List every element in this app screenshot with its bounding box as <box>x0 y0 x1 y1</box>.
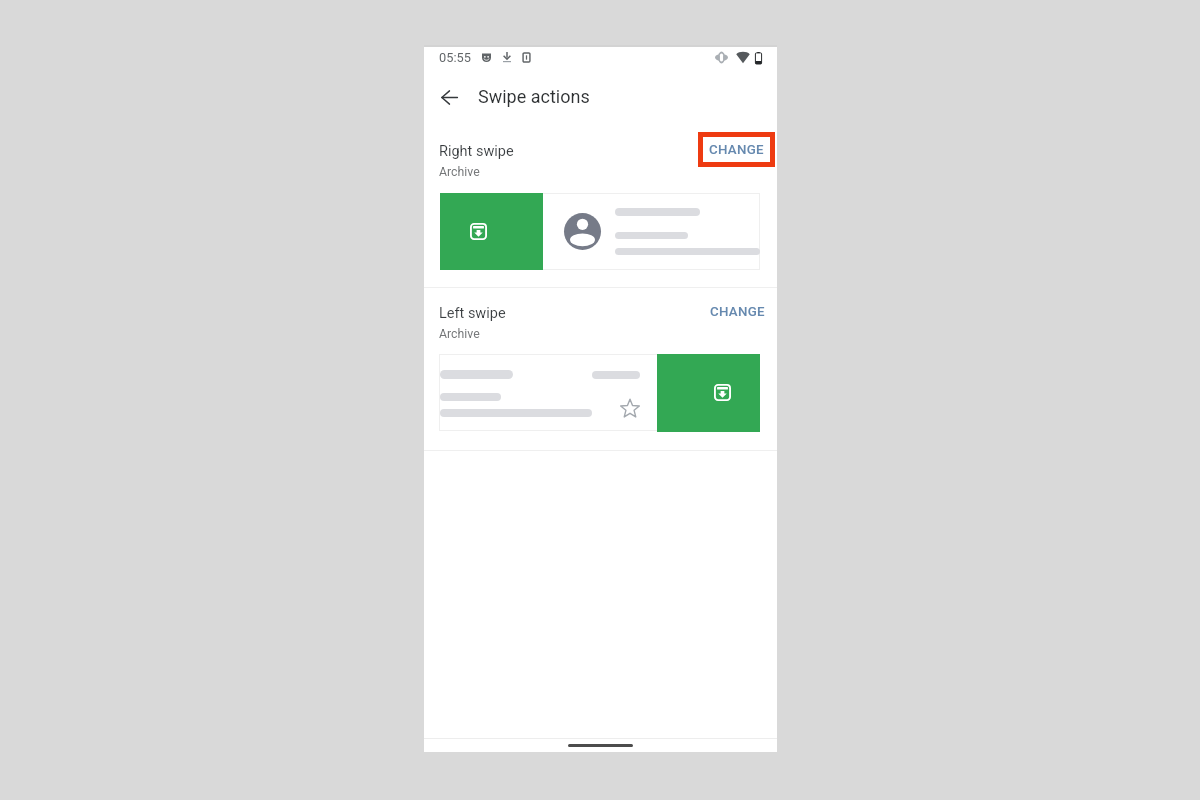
button[interactable]: Back <box>436 84 463 111</box>
button[interactable]: Archive <box>440 193 543 270</box>
button[interactable]: CHANGE <box>705 300 769 324</box>
staticText: Right swipe <box>439 143 514 160</box>
staticText: 05:55 <box>439 50 471 65</box>
staticText: CHANGE <box>710 304 765 320</box>
staticText: Swipe actions <box>478 86 590 107</box>
staticText: Left swipe <box>439 305 506 322</box>
staticText: Archive <box>439 165 480 179</box>
button[interactable]: CHANGE <box>698 132 775 167</box>
staticText: Archive <box>439 327 480 341</box>
staticText: CHANGE <box>709 142 764 158</box>
button[interactable]: Archive <box>657 354 760 432</box>
